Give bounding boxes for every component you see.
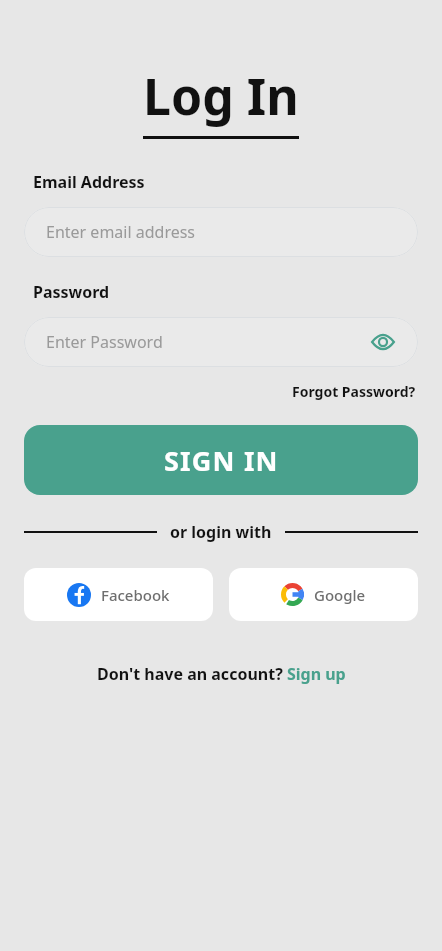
staticText: Email Address (33, 171, 145, 193)
staticText: Enter email address (46, 221, 196, 243)
button[interactable]: Enter Password (24, 317, 418, 367)
button[interactable]: Show password (368, 327, 398, 357)
staticText: Password (33, 281, 110, 303)
staticText: Google (314, 585, 366, 605)
button[interactable]: Google (229, 568, 418, 621)
button[interactable]: Forgot Password? (292, 382, 416, 401)
button[interactable]: Don't have an account? Sign up (97, 663, 346, 685)
button[interactable]: SIGN IN (24, 425, 418, 495)
staticText: Facebook (101, 585, 170, 605)
staticText: Log In (143, 62, 299, 130)
staticText: Don't have an account? Sign up (97, 663, 346, 685)
button[interactable]: Facebook (24, 568, 213, 621)
button[interactable]: Enter email address (24, 207, 418, 257)
staticText: SIGN IN (164, 442, 279, 479)
staticText: Forgot Password? (292, 382, 416, 401)
staticText: Enter Password (46, 331, 163, 353)
staticText: or login with (170, 521, 272, 543)
